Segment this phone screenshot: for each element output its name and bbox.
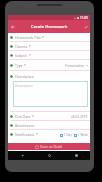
staticText: 11:05 [80,16,88,20]
staticText: * [29,44,31,49]
button[interactable]: Notification [8,130,90,139]
staticText: * [24,63,26,68]
button[interactable]: Attachment [8,121,90,130]
staticText: * [36,132,38,137]
staticText: * [29,53,31,58]
button[interactable]: Navigate up [8,22,17,31]
staticText: * [42,35,44,40]
staticText: Create Homework [31,24,68,30]
button[interactable]: 1 Week [74,133,88,137]
staticText: Presentation [65,64,85,68]
button[interactable]: Due Date [8,112,90,121]
staticText: Description [15,74,34,79]
button[interactable]: Recent apps [73,152,80,159]
staticText: Description [15,83,33,87]
staticText: Type [15,63,23,68]
button[interactable]: Save as Draft [8,143,90,150]
staticText: * [32,114,34,119]
button[interactable]: Save homework [81,22,90,31]
button[interactable]: Classes [8,42,90,51]
button[interactable]: 1 Day [60,133,72,137]
button[interactable]: Homework Title [8,32,90,42]
staticText: Attachment [15,123,35,128]
button[interactable]: Subject [8,51,90,60]
staticText: 24.02.2019 [71,115,88,119]
button[interactable]: Type [8,60,90,71]
staticText: 1 Week [78,133,88,137]
staticText: Notification [15,132,35,137]
button[interactable]: Home [46,152,53,159]
staticText: Save as Draft [40,144,63,149]
button[interactable]: Description [13,81,88,107]
staticText: Due Date [15,114,31,119]
staticText: Homework Title [15,35,41,40]
staticText: 1 Day [64,133,72,137]
staticText: Subject [15,53,28,58]
button[interactable]: Back [19,152,26,159]
staticText: Classes [15,44,28,49]
